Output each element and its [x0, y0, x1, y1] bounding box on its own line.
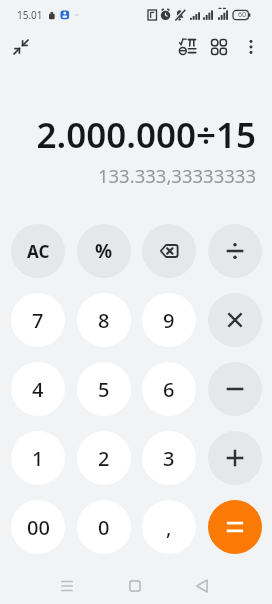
button[interactable]: %	[77, 224, 131, 278]
staticText: %	[95, 238, 113, 264]
staticText: 4	[32, 376, 44, 403]
button[interactable]: More options	[237, 33, 265, 61]
button[interactable]: 1	[11, 431, 65, 485]
button[interactable]: 5	[77, 362, 131, 416]
staticText: 60	[238, 10, 247, 20]
staticText: 3	[163, 445, 175, 472]
button[interactable]: Backspace	[142, 224, 196, 278]
button[interactable]: Collapse	[7, 33, 35, 61]
button[interactable]: Home	[117, 568, 153, 604]
button[interactable]: Equals	[208, 500, 262, 554]
staticText: 00	[27, 514, 50, 541]
button[interactable]: 9	[142, 293, 196, 347]
button[interactable]: Back	[184, 568, 220, 604]
staticText: 6	[163, 376, 175, 403]
button[interactable]: Plus	[208, 431, 262, 485]
staticText: 8	[98, 307, 110, 334]
staticText: 2	[98, 445, 110, 472]
staticText: 1	[32, 445, 44, 472]
staticText: ,	[166, 514, 172, 541]
staticText: 2.000.000÷15	[36, 111, 256, 159]
button[interactable]: 00	[11, 500, 65, 554]
button[interactable]: Keypad layout	[205, 33, 233, 61]
button[interactable]: 6	[142, 362, 196, 416]
staticText: 15.01	[17, 8, 43, 22]
staticText: 0	[98, 514, 110, 541]
button[interactable]: 2	[77, 431, 131, 485]
button[interactable]: 4	[11, 362, 65, 416]
button[interactable]: 3	[142, 431, 196, 485]
staticText: 133.333,33333333	[97, 163, 256, 188]
button[interactable]: Multiply	[208, 293, 262, 347]
staticText: 9	[163, 307, 175, 334]
button[interactable]: 0	[77, 500, 131, 554]
button[interactable]: AC	[11, 224, 65, 278]
button[interactable]: Minus	[208, 362, 262, 416]
button[interactable]: Recent apps	[49, 568, 85, 604]
staticText: 5	[98, 376, 110, 403]
button[interactable]: 8	[77, 293, 131, 347]
button[interactable]: 7	[11, 293, 65, 347]
staticText: AC	[27, 240, 50, 263]
button[interactable]: ,	[142, 500, 196, 554]
staticText: 7	[32, 307, 44, 334]
button[interactable]: Divide	[208, 224, 262, 278]
button[interactable]: Scientific mode	[173, 33, 201, 61]
